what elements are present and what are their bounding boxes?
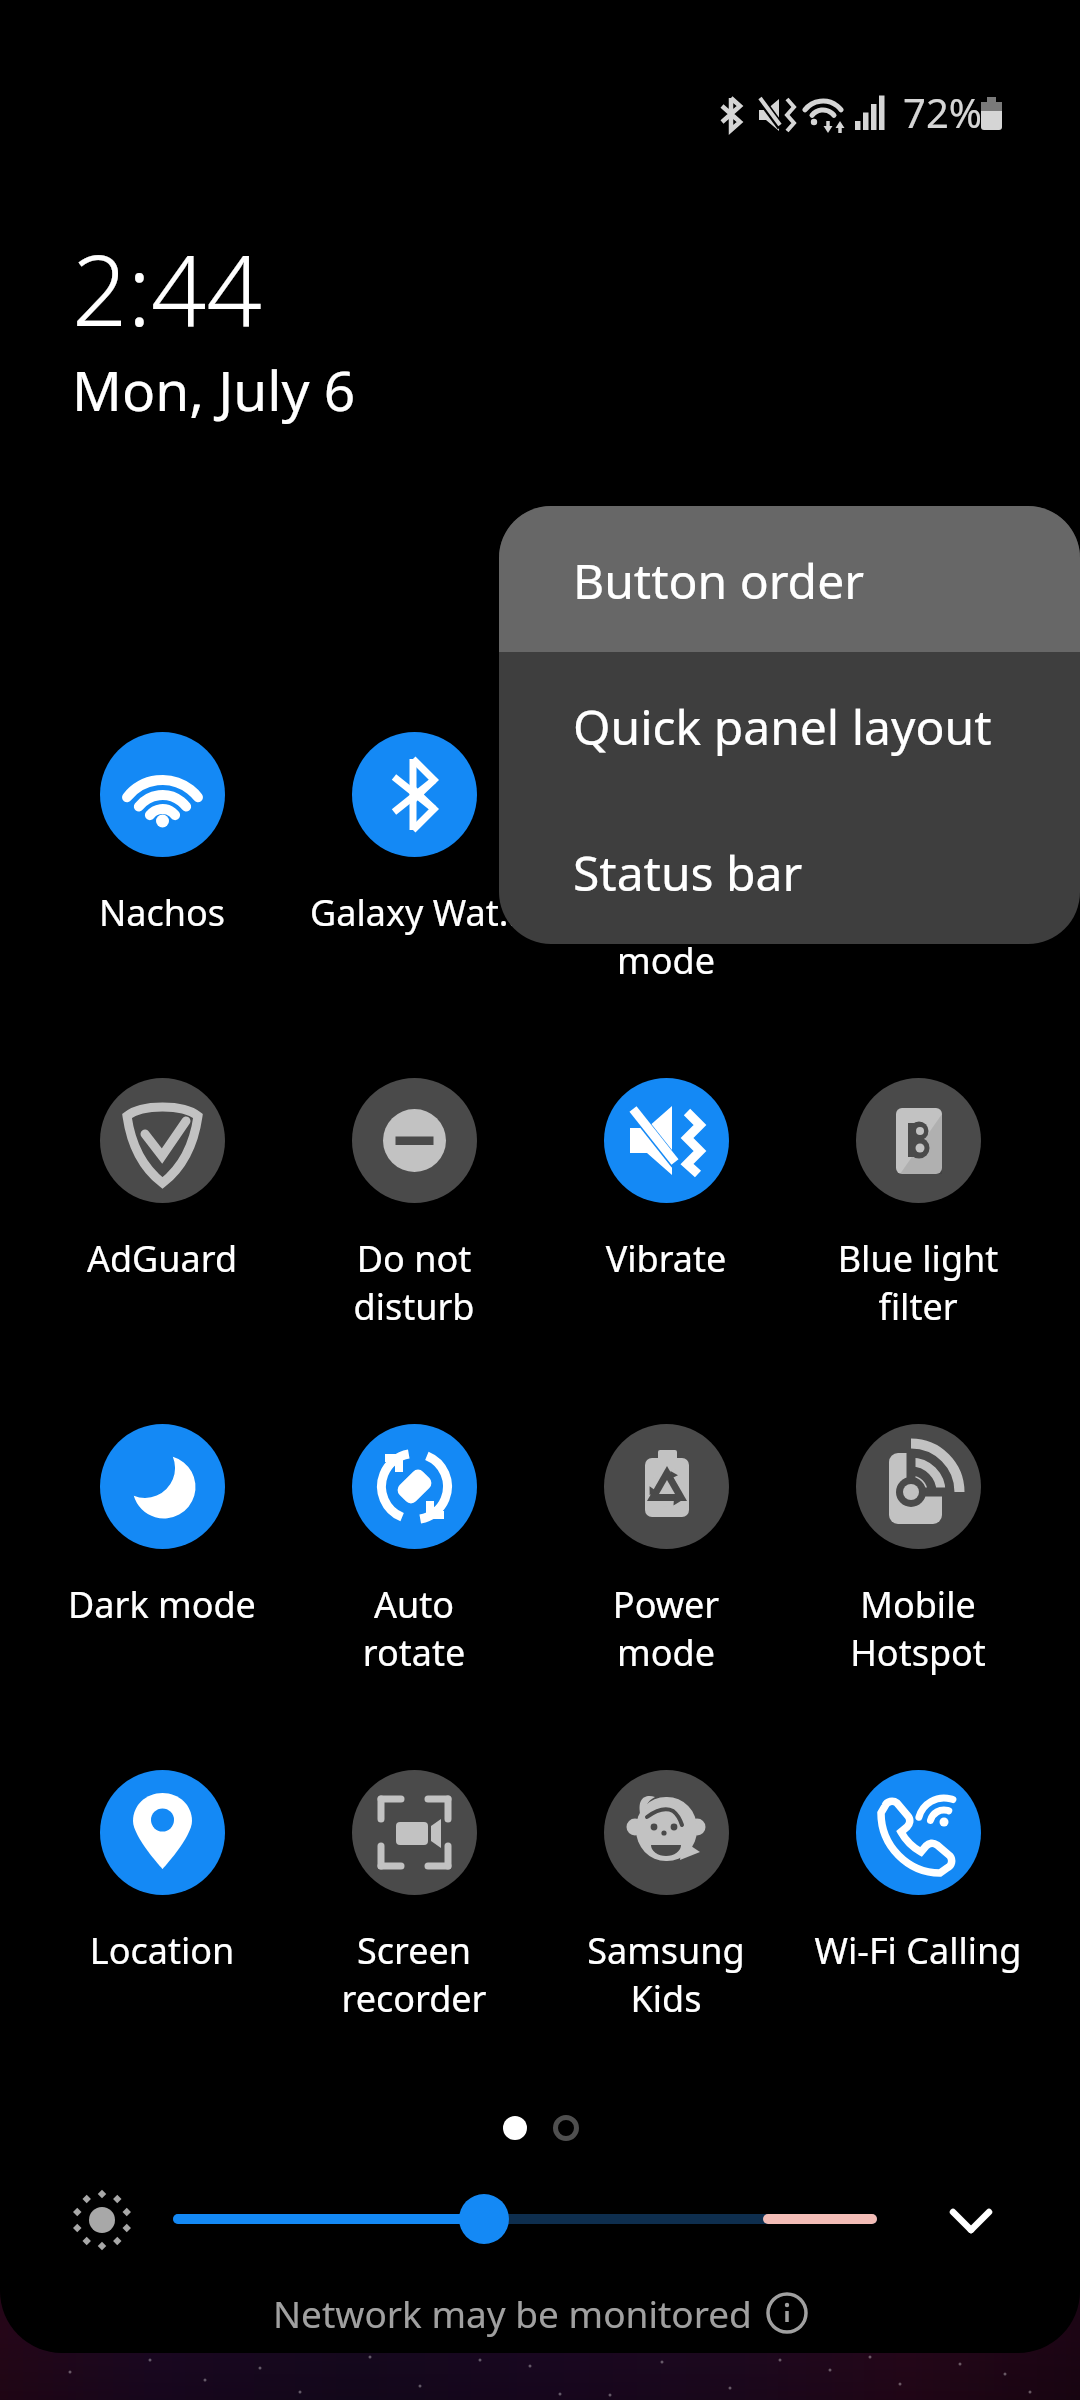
staticText: Airplane mode (541, 888, 791, 984)
button[interactable]: Wi-Fi Calling (793, 1770, 1043, 2020)
staticText: AdGuard (37, 1234, 287, 1283)
staticText: Vibrate (541, 1234, 791, 1283)
button[interactable]: Auto rotate (289, 1424, 539, 1674)
button[interactable] (499, 2112, 531, 2144)
staticText: Do not disturb (289, 1234, 539, 1330)
staticText: Wi-Fi Calling (793, 1926, 1043, 1975)
button[interactable]: Power mode (541, 1424, 791, 1674)
button[interactable]: Mobile Hotspot (793, 1424, 1043, 1674)
button[interactable]: Sound (793, 732, 1043, 982)
button[interactable]: Button order (499, 506, 1080, 652)
button[interactable]: Status bar (499, 798, 1080, 944)
staticText: Dark mode (37, 1580, 287, 1629)
staticText: Location (37, 1926, 287, 1975)
button[interactable]: Screen recorder (289, 1770, 539, 2020)
staticText: Samsung Kids (541, 1926, 791, 2022)
button[interactable]: Blue light filter (793, 1078, 1043, 1328)
button[interactable]: Nachos (37, 732, 287, 982)
staticText: Auto rotate (289, 1580, 539, 1676)
staticText: Network may be monitored (273, 2288, 752, 2338)
button[interactable]: Airplane mode (541, 732, 791, 982)
button[interactable]: Location (37, 1770, 287, 2020)
staticText: 72% (903, 85, 982, 139)
staticText: Status bar (573, 840, 803, 905)
staticText: Screen recorder (289, 1926, 539, 2022)
staticText: Mobile Hotspot (793, 1580, 1043, 1676)
button[interactable]: Do not disturb (289, 1078, 539, 1328)
staticText: Mon, July 6 (72, 352, 356, 427)
button[interactable]: Dark mode (37, 1424, 287, 1674)
staticText: Blue light filter (793, 1234, 1043, 1330)
staticText: 2:44 (72, 222, 262, 354)
button[interactable]: Samsung Kids (541, 1770, 791, 2020)
button[interactable]: Quick panel layout (499, 652, 1080, 798)
staticText: Nachos (37, 888, 287, 937)
staticText: Button order (573, 548, 865, 613)
staticText: Galaxy Wat.. (289, 888, 539, 937)
button[interactable]: Galaxy Wat.. (289, 732, 539, 982)
staticText: Quick panel layout (573, 694, 992, 759)
button[interactable] (550, 2112, 582, 2144)
staticText: Power mode (541, 1580, 791, 1676)
button[interactable]: Network may be monitored (0, 2288, 1080, 2338)
button[interactable]: Vibrate (541, 1078, 791, 1328)
button[interactable]: Collapse quick settings (935, 2180, 1007, 2252)
button[interactable]: AdGuard (37, 1078, 287, 1328)
